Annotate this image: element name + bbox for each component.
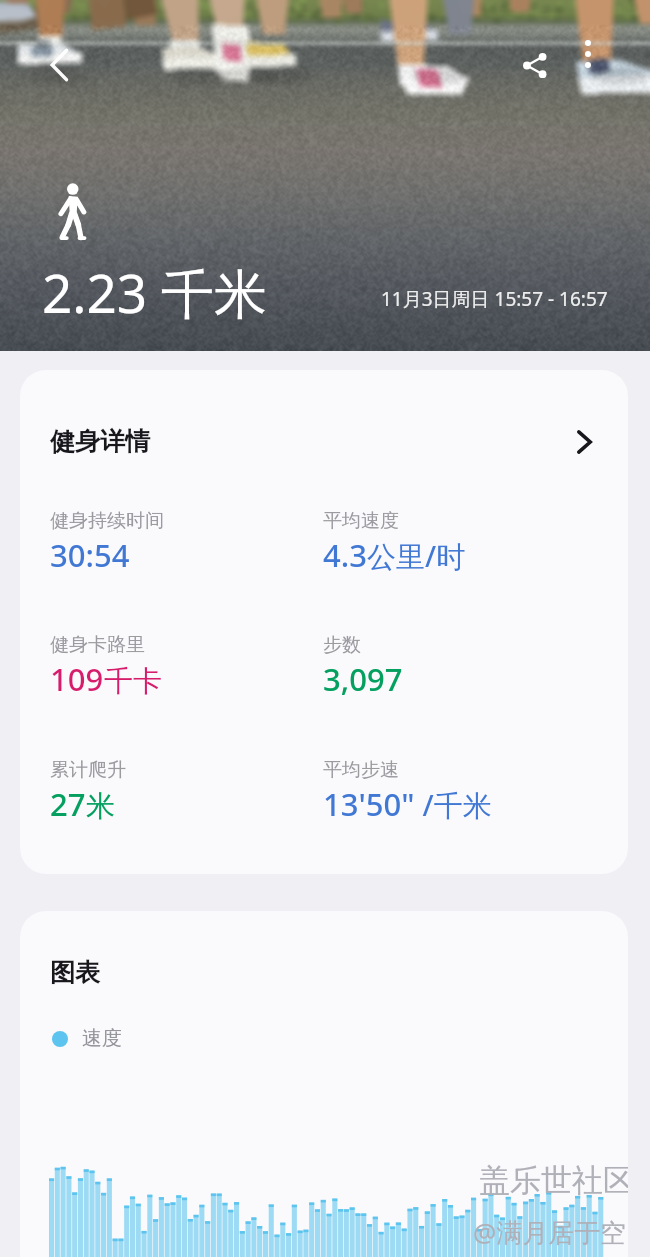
- staticText: 公里/时: [367, 536, 466, 576]
- staticText: /千米: [415, 785, 492, 825]
- staticText: 图表: [50, 957, 100, 988]
- staticText: 盖乐世社区: [479, 1161, 628, 1200]
- button[interactable]: More options: [566, 32, 610, 76]
- staticText: 健身卡路里: [50, 633, 145, 657]
- staticText: 平均步速: [323, 758, 399, 782]
- staticText: 累计爬升: [50, 758, 126, 782]
- button[interactable]: 健身详情: [20, 370, 628, 483]
- button[interactable]: Back: [37, 43, 81, 87]
- button[interactable]: Share: [512, 43, 556, 87]
- staticText: @满月居于空: [473, 1214, 627, 1250]
- staticText: 米: [86, 788, 115, 825]
- staticText: 步数: [323, 633, 361, 657]
- staticText: 2.23 千米: [42, 256, 267, 328]
- staticText: 速度: [82, 1026, 122, 1051]
- staticText: 健身详情: [50, 426, 150, 457]
- staticText: 千卡: [104, 663, 162, 700]
- staticText: 13'50": [323, 783, 415, 825]
- staticText: 11月3日周日 15:57 - 16:57: [381, 286, 608, 312]
- staticText: 健身持续时间: [50, 509, 164, 533]
- staticText: 109: [50, 658, 104, 700]
- staticText: 平均速度: [323, 509, 399, 533]
- staticText: 3,097: [323, 658, 403, 700]
- staticText: 4.3: [323, 534, 367, 576]
- staticText: 30:54: [50, 534, 130, 576]
- staticText: 27: [50, 783, 86, 825]
